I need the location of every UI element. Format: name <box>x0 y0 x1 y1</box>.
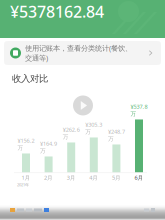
staticText: 收入对比 <box>12 73 48 84</box>
staticText: 2月 <box>44 174 53 181</box>
staticText: ¥5378162.84 <box>10 1 104 22</box>
staticText: ¥164.9万 <box>40 140 57 154</box>
staticText: 3月 <box>67 174 76 181</box>
staticText: ¥248.7万 <box>108 128 125 142</box>
button[interactable]: 使用记账本，查看分类统计(餐饮、交通等) <box>0 38 165 65</box>
staticText: ¥305.3万 <box>85 121 102 135</box>
staticText: 6月 <box>134 174 143 181</box>
staticText: 4月 <box>89 174 98 181</box>
staticText: ¥262.6万 <box>63 126 80 140</box>
staticText: ¥156.2万 <box>17 137 34 151</box>
staticText: 2021年 <box>17 182 29 187</box>
staticText: 使用记账本，查看分类统计(餐饮、交通等) <box>25 43 132 63</box>
staticText: 1月 <box>21 174 30 181</box>
staticText: ¥537.8万 <box>130 103 147 117</box>
button[interactable]: Play <box>73 95 93 115</box>
staticText: 5月 <box>112 174 121 181</box>
